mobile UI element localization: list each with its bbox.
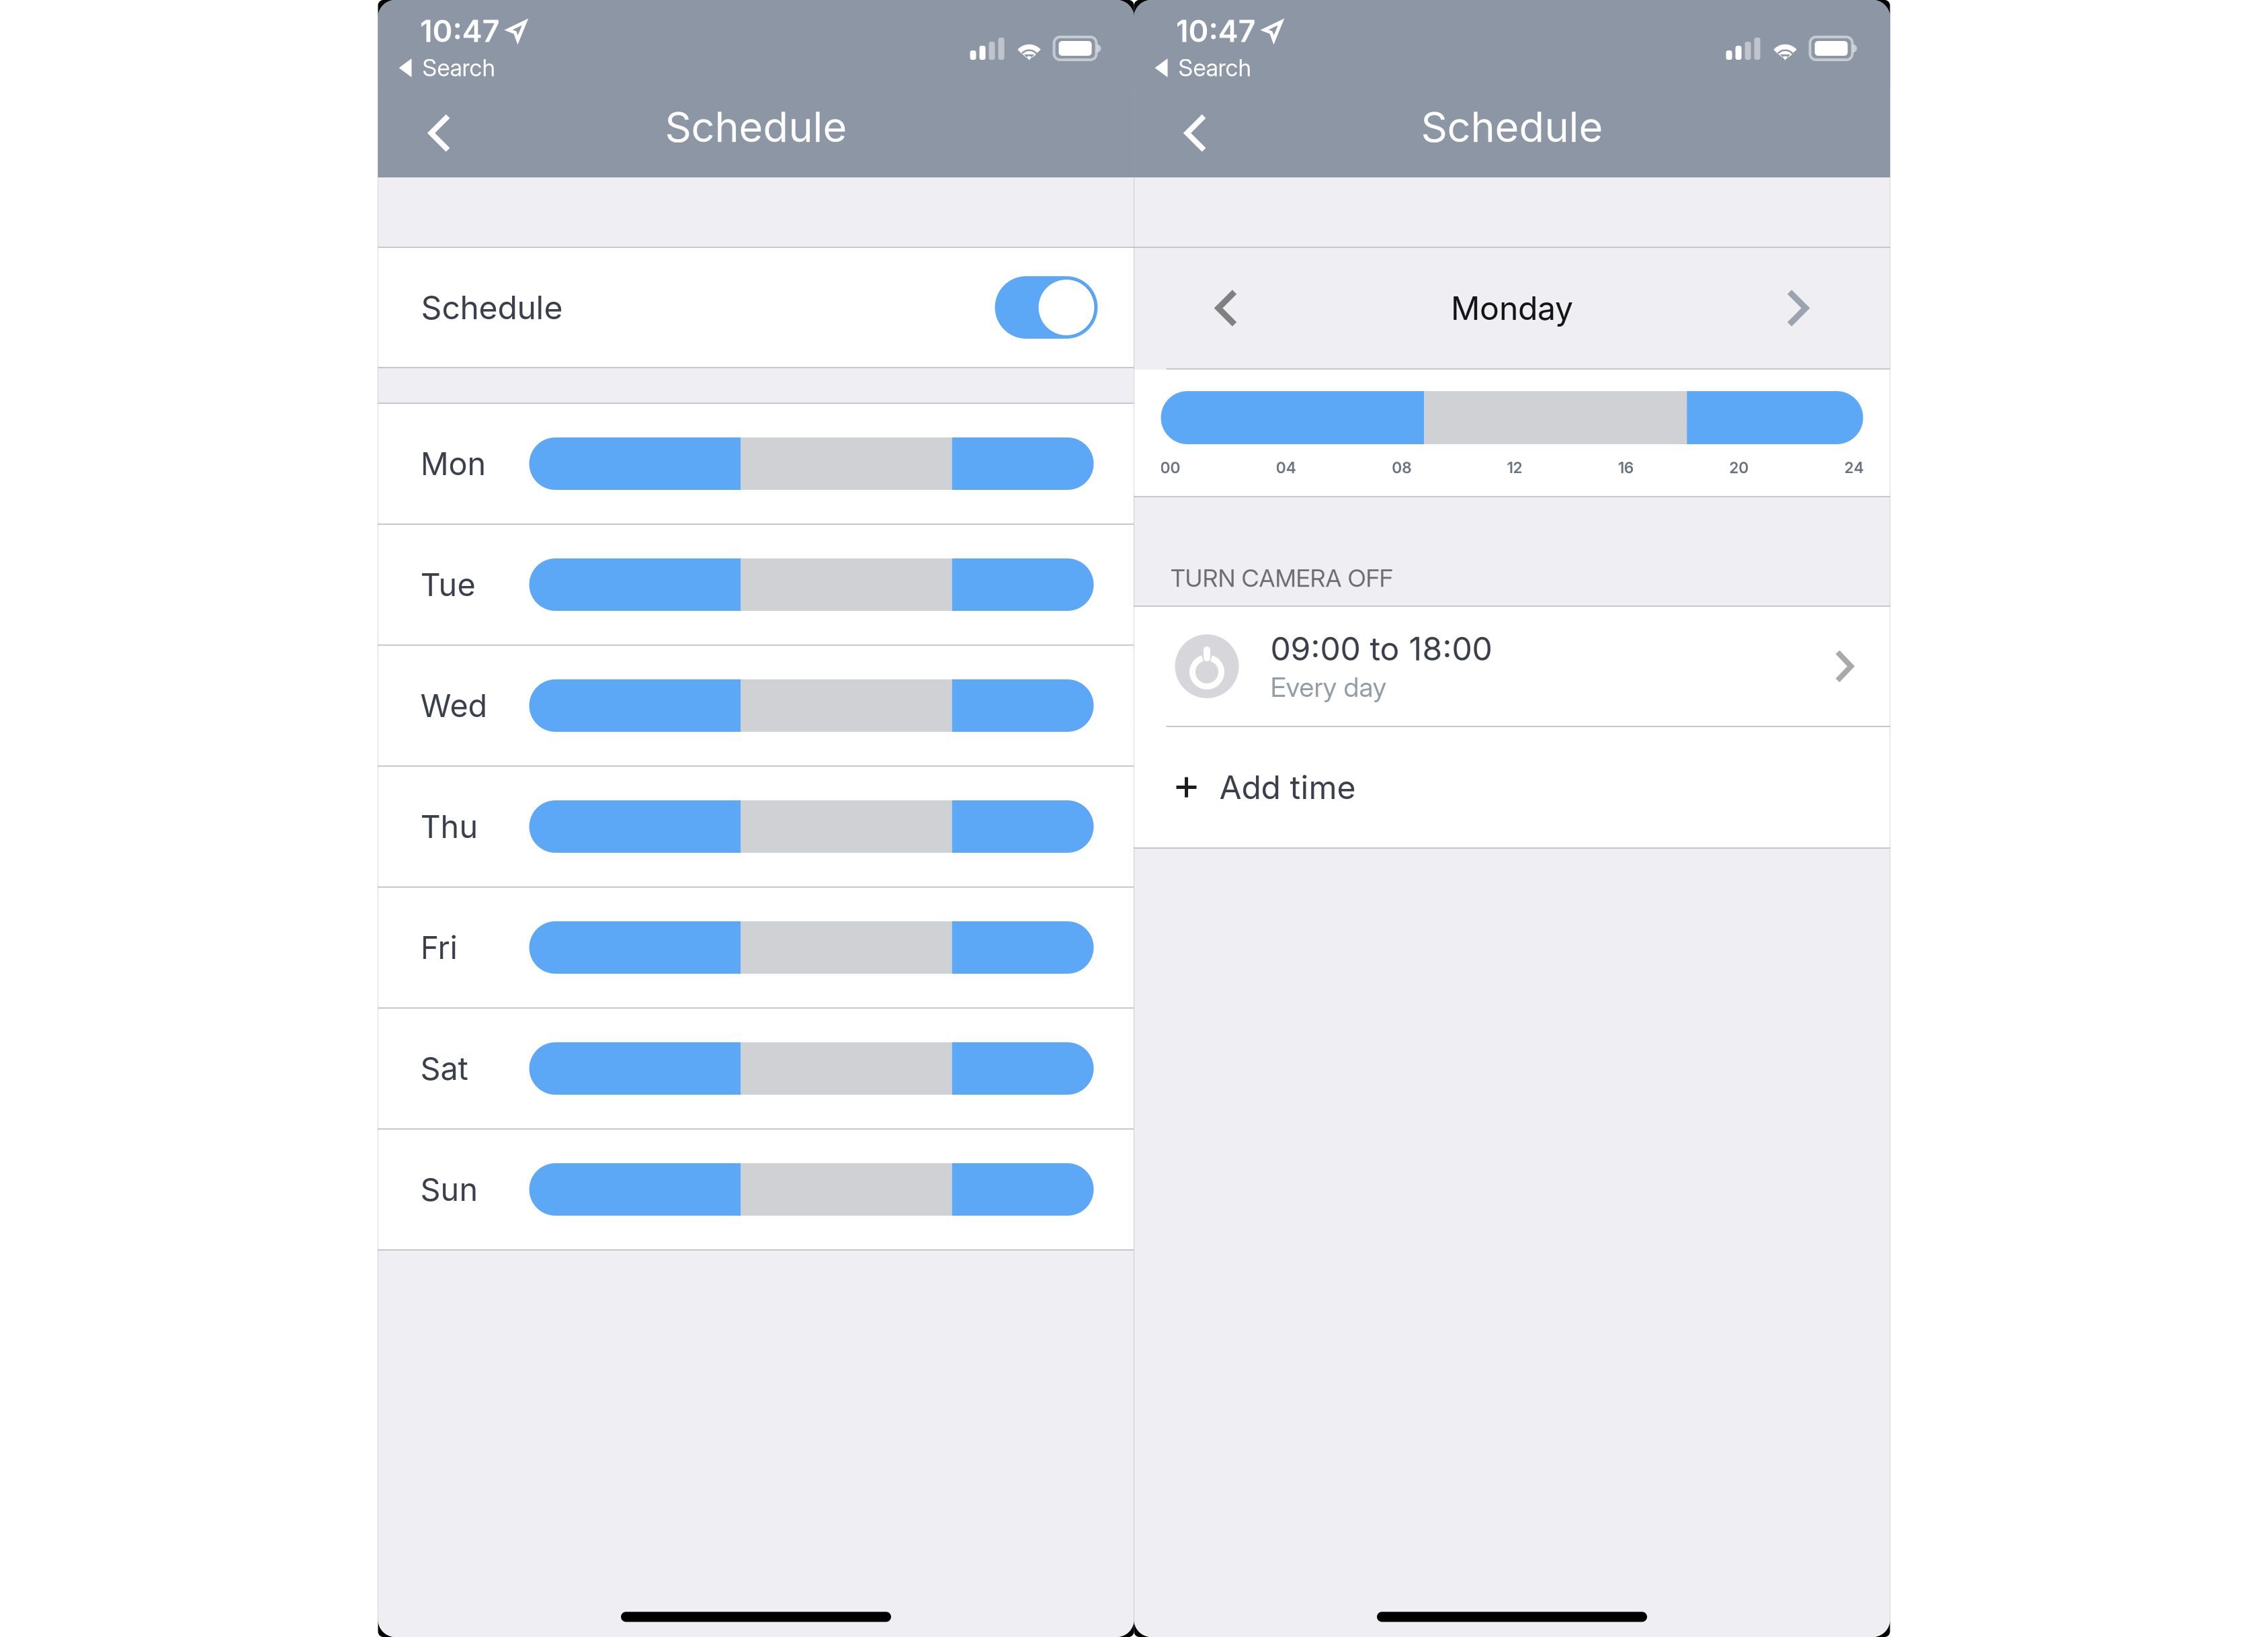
staticText: 10:47 xyxy=(1176,12,1256,49)
button[interactable]: Wed xyxy=(378,646,1134,765)
button[interactable]: Mon xyxy=(378,404,1134,523)
button[interactable]: Tue xyxy=(378,525,1134,644)
button[interactable]: Thu xyxy=(378,767,1134,886)
staticText: 20 xyxy=(1729,459,1749,477)
button[interactable]: Previous day xyxy=(1186,258,1267,358)
staticText: Sun xyxy=(420,1170,478,1208)
staticText: 00 xyxy=(1160,459,1180,477)
button[interactable]: Fri xyxy=(378,888,1134,1007)
button[interactable]: 09:00 to 18:00 xyxy=(1134,607,1890,726)
button[interactable]: Schedule xyxy=(378,248,1134,367)
button[interactable]: Back xyxy=(1155,89,1236,177)
staticText: Every day xyxy=(1270,671,1387,703)
staticText: Tue xyxy=(420,566,475,604)
staticText: 16 xyxy=(1618,459,1633,477)
staticText: Sat xyxy=(420,1050,468,1088)
staticText: Search xyxy=(422,54,495,82)
button[interactable]: Back xyxy=(399,89,480,177)
staticText: Thu xyxy=(420,808,478,846)
staticText: 08 xyxy=(1392,459,1411,477)
staticText: Schedule xyxy=(665,102,847,152)
staticText: Schedule xyxy=(421,288,563,327)
staticText: Fri xyxy=(420,929,457,967)
button[interactable]: Sat xyxy=(378,1009,1134,1128)
staticText: 12 xyxy=(1507,459,1522,477)
staticText: Search xyxy=(1178,54,1251,82)
button[interactable]: Sun xyxy=(378,1130,1134,1249)
button[interactable]: Next day xyxy=(1757,258,1838,358)
staticText: Mon xyxy=(420,445,486,483)
staticText: Schedule xyxy=(1421,102,1603,152)
staticText: Wed xyxy=(420,687,488,725)
staticText: 10:47 xyxy=(420,12,500,49)
staticText: TURN CAMERA OFF xyxy=(1170,563,1393,593)
staticText: 24 xyxy=(1844,459,1864,477)
staticText: Add time xyxy=(1219,768,1356,807)
staticText: 04 xyxy=(1276,459,1296,477)
staticText: 09:00 to 18:00 xyxy=(1270,629,1492,668)
button[interactable]: Add time xyxy=(1134,727,1890,847)
staticText: Monday xyxy=(1451,289,1573,328)
